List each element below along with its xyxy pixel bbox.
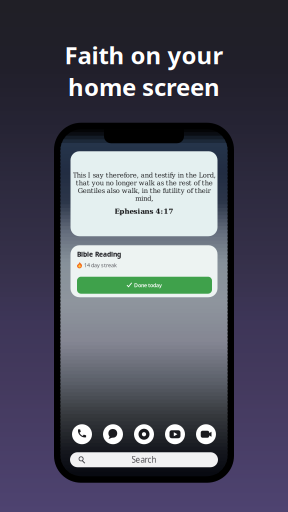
staticText: This I say therefore, and testify in the… — [72, 171, 215, 202]
staticText: Bible Reading — [77, 250, 121, 259]
staticText: Search — [131, 454, 156, 465]
button[interactable]: YouTube — [165, 424, 185, 444]
button[interactable]: Browser — [134, 424, 154, 444]
button[interactable]: Search — [70, 452, 218, 467]
staticText: Faith on your — [64, 39, 223, 71]
staticText: 14 day streak — [84, 262, 117, 269]
staticText: home screen — [68, 71, 220, 103]
staticText: Ephesians 4:17 — [114, 207, 173, 215]
button[interactable]: Messages — [103, 424, 123, 444]
staticText: Done today — [134, 282, 162, 289]
button[interactable]: Camera — [196, 424, 216, 444]
button[interactable]: Phone — [72, 424, 92, 444]
button[interactable]: Bible Reading — [70, 245, 217, 297]
button[interactable]: This I say therefore, and testify in the… — [70, 151, 217, 236]
